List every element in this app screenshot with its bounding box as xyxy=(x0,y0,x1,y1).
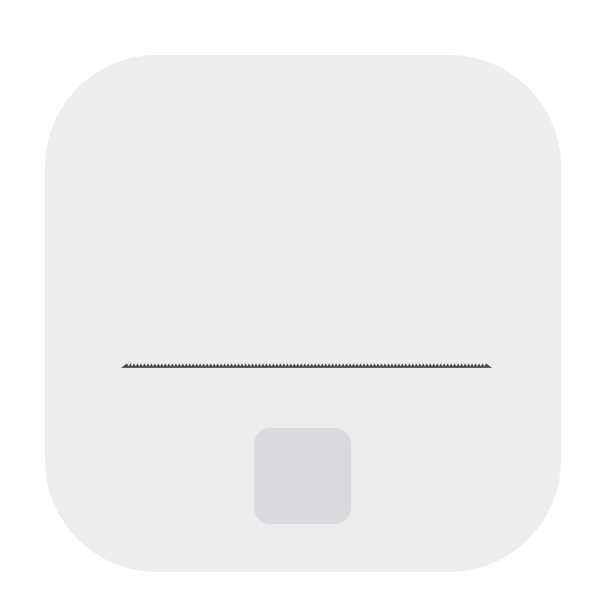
button[interactable]: Image placeholder xyxy=(254,428,351,524)
